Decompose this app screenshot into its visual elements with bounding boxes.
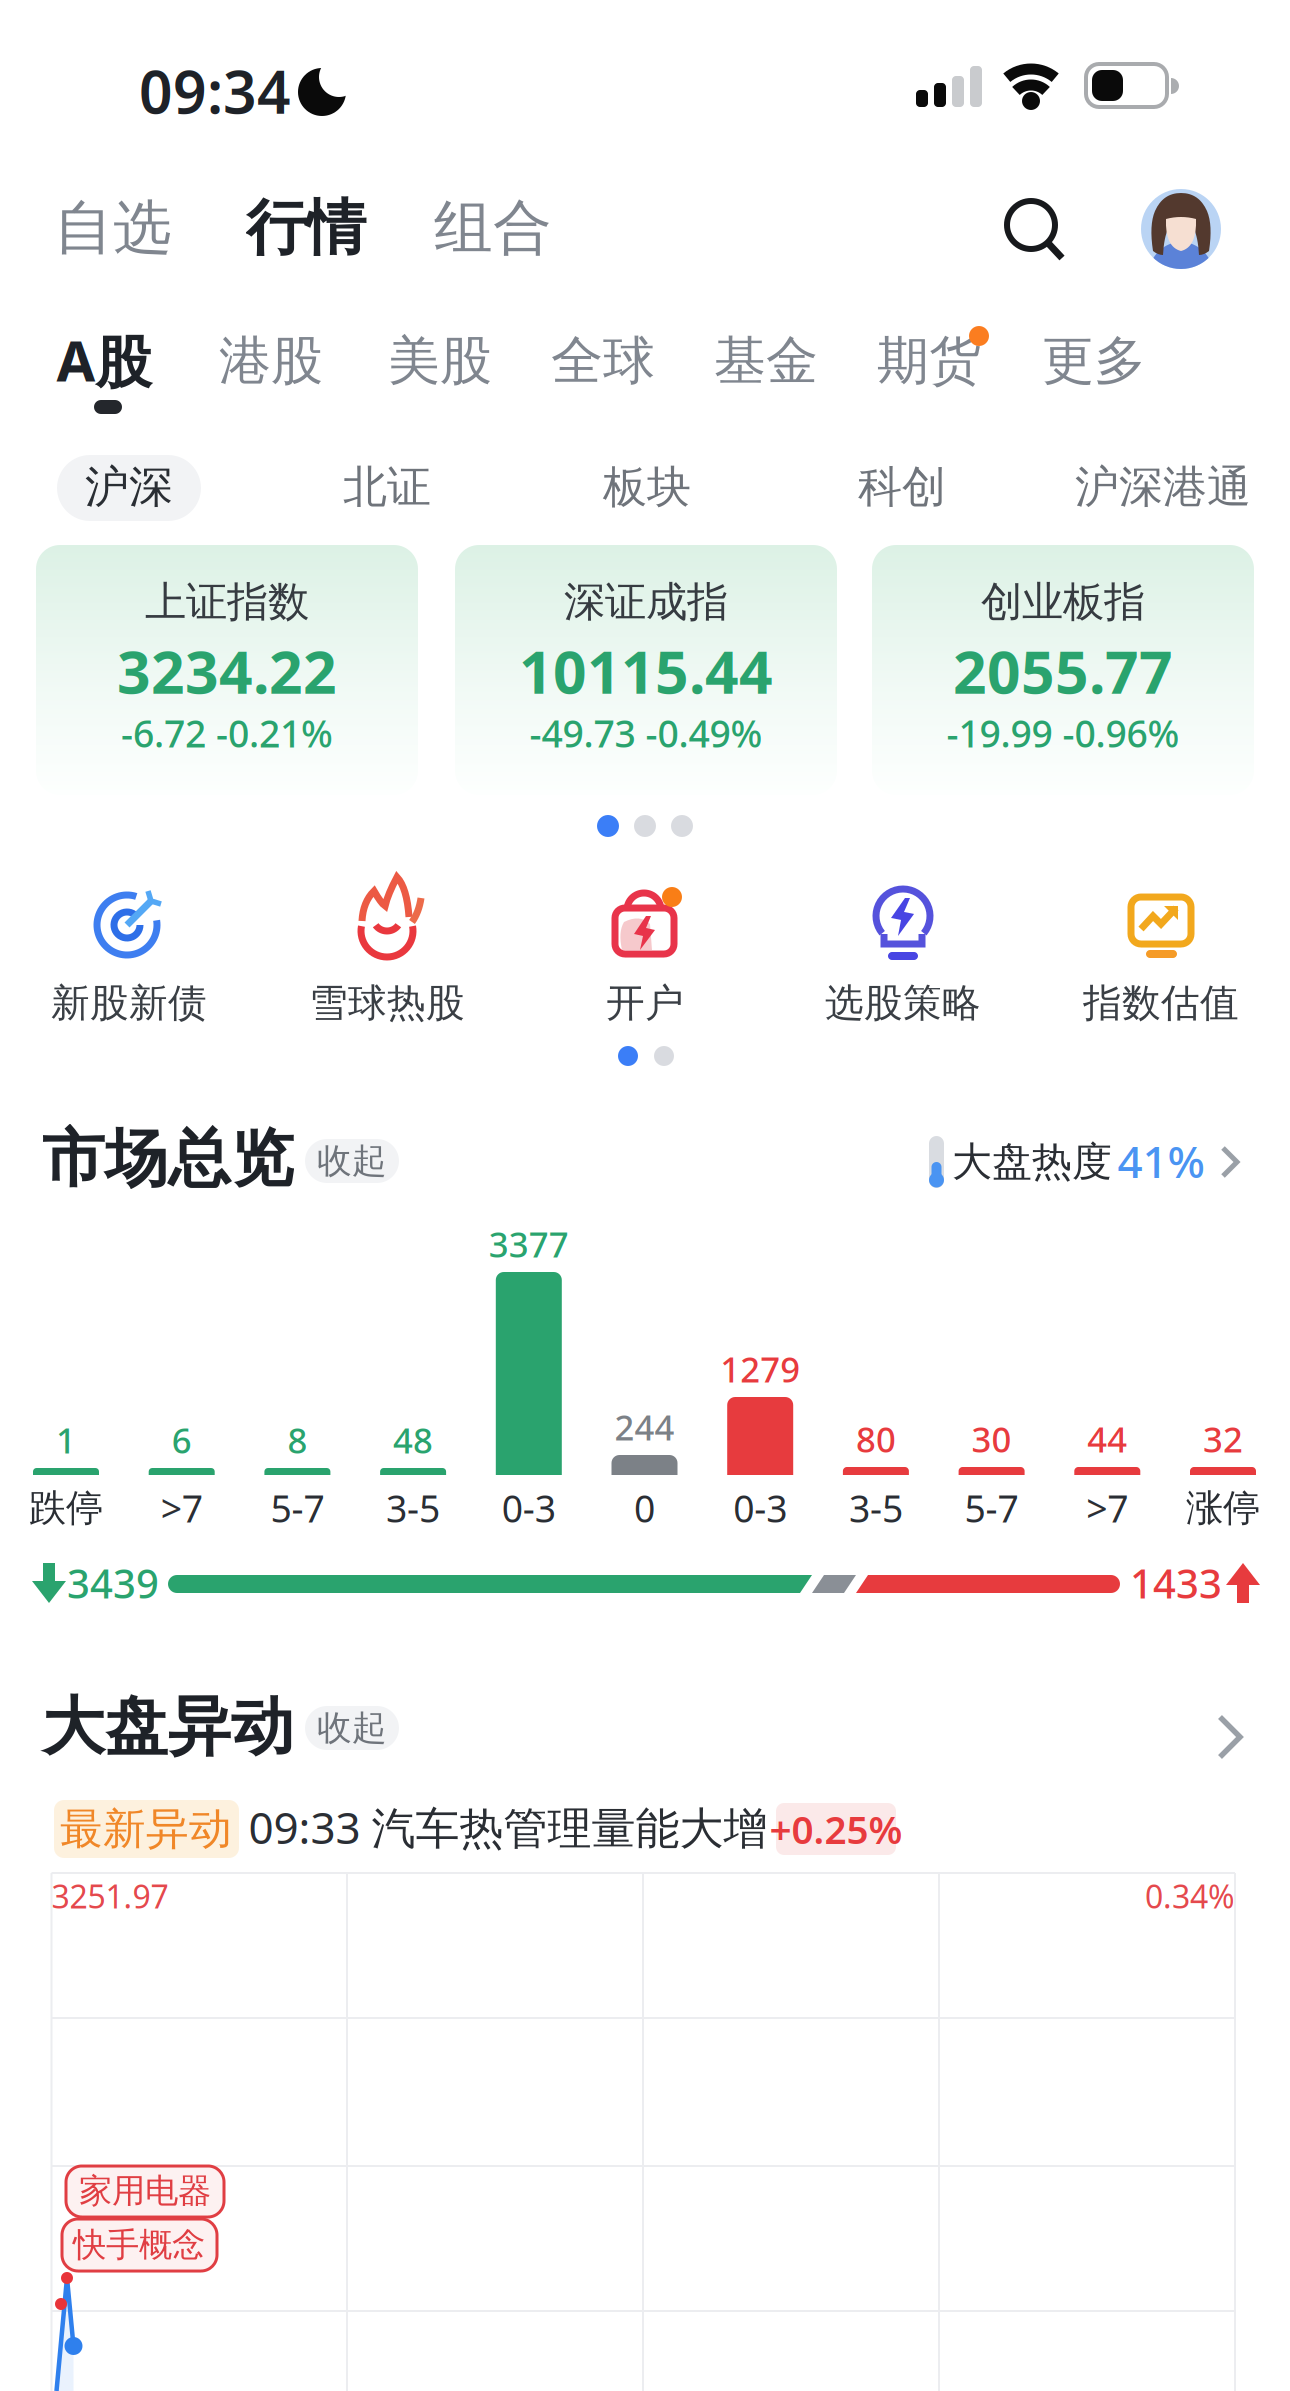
- staticText: >7: [161, 1483, 203, 1533]
- staticText: 期货: [877, 329, 981, 393]
- staticText: 市场总览: [42, 1120, 294, 1197]
- staticText: 创业板指: [981, 577, 1145, 627]
- button[interactable]: 搜索: [0, 0, 1290, 2391]
- staticText: 1433: [1130, 1556, 1222, 1609]
- button[interactable]: 沪深港通: [0, 0, 1290, 2391]
- staticText: 09:34: [139, 52, 291, 130]
- button[interactable]: 更多异动: [0, 0, 1290, 2391]
- staticText: 8: [287, 1417, 307, 1463]
- staticText: 美股: [388, 329, 492, 393]
- staticText: 涨停: [1186, 1485, 1260, 1531]
- button[interactable]: A股: [0, 0, 1290, 2391]
- staticText: 3-5: [386, 1483, 440, 1533]
- button[interactable]: 收起: [0, 0, 1290, 2391]
- staticText: -49.73 -0.49%: [529, 708, 762, 758]
- staticText: 指数估值: [1083, 979, 1239, 1027]
- staticText: 10115.44: [519, 632, 773, 710]
- staticText: 0: [634, 1483, 655, 1533]
- button[interactable]: 个人主页: [0, 0, 1290, 2391]
- staticText: 北证: [343, 460, 431, 514]
- button[interactable]: 行情: [0, 0, 1290, 2391]
- staticText: 1: [56, 1417, 76, 1463]
- button[interactable]: 港股: [0, 0, 1290, 2391]
- staticText: 0.34%: [1145, 1875, 1235, 1917]
- staticText: 3251.97: [51, 1875, 168, 1917]
- button[interactable]: 科创: [0, 0, 1290, 2391]
- button[interactable]: 期货: [0, 0, 1290, 2391]
- staticText: 自选: [54, 192, 172, 264]
- button[interactable]: 北证: [0, 0, 1290, 2391]
- staticText: 44: [1087, 1416, 1127, 1462]
- staticText: -6.72 -0.21%: [121, 708, 333, 758]
- button[interactable]: 开户: [0, 0, 1290, 2391]
- staticText: 收起: [317, 1140, 387, 1182]
- staticText: 3-5: [849, 1483, 903, 1533]
- button[interactable]: 美股: [0, 0, 1290, 2391]
- staticText: 32: [1203, 1416, 1243, 1462]
- staticText: 基金: [714, 329, 818, 393]
- button[interactable]: 基金: [0, 0, 1290, 2391]
- button[interactable]: 全球: [0, 0, 1290, 2391]
- staticText: 新股新债: [51, 979, 207, 1027]
- staticText: 雪球热股: [309, 979, 465, 1027]
- button[interactable]: 更多: [0, 0, 1290, 2391]
- staticText: 大盘异动: [42, 1688, 294, 1765]
- staticText: 09:33 汽车热管理量能大增: [248, 1798, 767, 1856]
- staticText: 5-7: [965, 1483, 1019, 1533]
- button[interactable]: 组合: [0, 0, 1290, 2391]
- staticText: 上证指数: [145, 577, 309, 627]
- button[interactable]: 雪球热股: [0, 0, 1290, 2391]
- staticText: 1279: [720, 1346, 800, 1392]
- staticText: 全球: [551, 329, 655, 393]
- staticText: 80: [856, 1416, 896, 1462]
- button[interactable]: 自选: [0, 0, 1290, 2391]
- staticText: 3377: [489, 1221, 569, 1267]
- button[interactable]: 收起: [0, 0, 1290, 2391]
- button[interactable]: 创业板指: [872, 545, 1254, 795]
- staticText: -19.99 -0.96%: [946, 708, 1179, 758]
- button[interactable]: 最新异动: [0, 0, 1290, 2391]
- staticText: 收起: [317, 1707, 387, 1749]
- staticText: 开户: [606, 979, 684, 1027]
- staticText: 港股: [219, 329, 323, 393]
- button[interactable]: 板块: [0, 0, 1290, 2391]
- staticText: 快手概念: [73, 2224, 205, 2265]
- button[interactable]: 上证指数: [36, 545, 418, 795]
- staticText: 沪深港通: [1075, 460, 1251, 514]
- staticText: 科创: [858, 460, 946, 514]
- staticText: 跌停: [29, 1485, 103, 1531]
- staticText: 3234.22: [117, 632, 337, 710]
- staticText: 48: [393, 1417, 433, 1463]
- staticText: >7: [1086, 1483, 1128, 1533]
- staticText: A股: [56, 323, 151, 397]
- staticText: 最新异动: [60, 1803, 232, 1855]
- staticText: 沪深: [85, 460, 173, 514]
- button[interactable]: 新股新债: [0, 0, 1290, 2391]
- staticText: 0-3: [733, 1483, 787, 1533]
- staticText: 6: [172, 1417, 192, 1463]
- staticText: 深证成指: [564, 577, 728, 627]
- staticText: 244: [614, 1404, 674, 1450]
- staticText: 行情: [246, 191, 366, 265]
- staticText: 更多: [1042, 329, 1146, 393]
- staticText: 3439: [67, 1556, 159, 1609]
- staticText: 大盘热度: [952, 1137, 1112, 1186]
- staticText: 5-7: [270, 1483, 324, 1533]
- button[interactable]: 深证成指: [455, 545, 837, 795]
- staticText: +0.25%: [769, 1803, 902, 1855]
- staticText: 家用电器: [79, 2170, 211, 2211]
- staticText: 41%: [1117, 1132, 1204, 1190]
- button[interactable]: 选股策略: [0, 0, 1290, 2391]
- staticText: 0-3: [502, 1483, 556, 1533]
- staticText: 选股策略: [825, 979, 981, 1027]
- staticText: 30: [972, 1416, 1012, 1462]
- staticText: 板块: [603, 460, 691, 514]
- button[interactable]: 沪深: [0, 0, 1290, 2391]
- staticText: 组合: [434, 192, 552, 264]
- staticText: 2055.77: [953, 632, 1173, 710]
- button[interactable]: 大盘热度: [0, 0, 1290, 2391]
- button[interactable]: 指数估值: [0, 0, 1290, 2391]
